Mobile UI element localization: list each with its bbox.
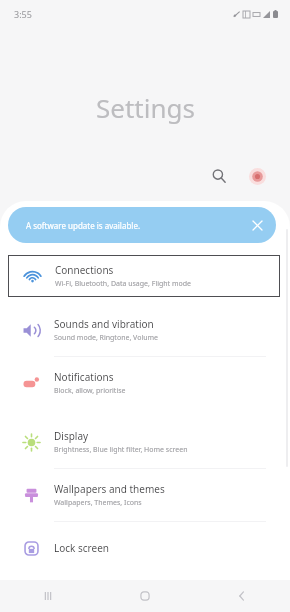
staticText: Lock screen (54, 541, 110, 555)
button[interactable]: Wallpapers and themes (8, 469, 280, 521)
button[interactable]: Display (8, 416, 280, 468)
staticText: A software update is available. (26, 220, 141, 231)
staticText: 3:55 (14, 8, 32, 20)
staticText: Wi-Fi, Bluetooth, Data usage, Flight mod… (55, 279, 192, 289)
button[interactable]: Notifications (8, 357, 280, 409)
staticText: Wallpapers, Themes, Icons (54, 498, 142, 508)
staticText: Wallpapers and themes (54, 482, 165, 496)
button[interactable]: Account (242, 161, 272, 191)
staticText: Brightness, Blue light filter, Home scre… (54, 445, 188, 455)
button[interactable]: Connections (9, 256, 279, 296)
staticText: Sound mode, Ringtone, Volume (54, 333, 159, 343)
staticText: Display (54, 429, 89, 443)
button[interactable]: Home (128, 580, 162, 612)
staticText: Connections (55, 263, 114, 277)
button[interactable]: Sounds and vibration (8, 304, 280, 356)
staticText: Block, allow, prioritise (54, 386, 126, 396)
button[interactable]: Dismiss update notice (246, 214, 268, 236)
staticText: Notifications (54, 370, 114, 384)
button[interactable]: Back (225, 580, 259, 612)
button[interactable]: Lock screen (8, 522, 280, 574)
button[interactable]: Recent apps (31, 580, 65, 612)
staticText: Settings (96, 90, 195, 125)
staticText: Sounds and vibration (54, 317, 154, 331)
button[interactable]: A software update is available. (8, 207, 276, 243)
button[interactable]: Search (204, 161, 234, 191)
